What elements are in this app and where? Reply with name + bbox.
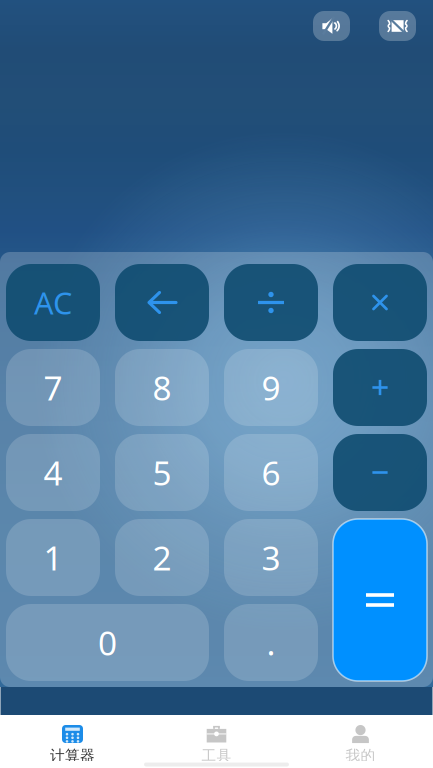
staticText: 5 <box>152 450 171 495</box>
button[interactable]: 5 <box>115 434 209 511</box>
button[interactable]: Mute <box>313 11 350 41</box>
button[interactable]: Multiply <box>333 264 427 341</box>
staticText: 计算器 <box>50 746 95 764</box>
button[interactable]: 9 <box>224 349 318 426</box>
button[interactable]: Vibrate <box>379 11 416 41</box>
button[interactable]: 3 <box>224 519 318 596</box>
button[interactable]: 7 <box>6 349 100 426</box>
staticText: 6 <box>261 450 280 495</box>
staticText: AC <box>34 282 72 323</box>
button[interactable]: . <box>224 604 318 681</box>
button[interactable]: AC <box>6 264 100 341</box>
staticText: 2 <box>152 535 171 580</box>
button[interactable]: 计算器 <box>0 711 144 764</box>
staticText: 我的 <box>345 746 375 764</box>
staticText: 8 <box>152 365 171 410</box>
staticText: . <box>266 620 275 665</box>
staticText: 1 <box>43 535 62 580</box>
staticText: 0 <box>98 620 117 665</box>
staticText: 3 <box>261 535 280 580</box>
button[interactable]: 1 <box>6 519 100 596</box>
button[interactable]: 4 <box>6 434 100 511</box>
staticText: 9 <box>261 365 280 410</box>
button[interactable]: 工具 <box>144 711 288 764</box>
button[interactable]: 6 <box>224 434 318 511</box>
staticText: 工具 <box>201 746 231 764</box>
button[interactable]: Plus <box>333 349 427 426</box>
button[interactable]: Backspace <box>115 264 209 341</box>
button[interactable]: 2 <box>115 519 209 596</box>
button[interactable]: 我的 <box>288 711 432 764</box>
staticText: 7 <box>43 365 62 410</box>
button[interactable]: 8 <box>115 349 209 426</box>
button[interactable]: Equals <box>333 519 427 681</box>
staticText: 4 <box>43 450 62 495</box>
button[interactable]: Minus <box>333 434 427 511</box>
button[interactable]: Divide <box>224 264 318 341</box>
button[interactable]: 0 <box>6 604 209 681</box>
